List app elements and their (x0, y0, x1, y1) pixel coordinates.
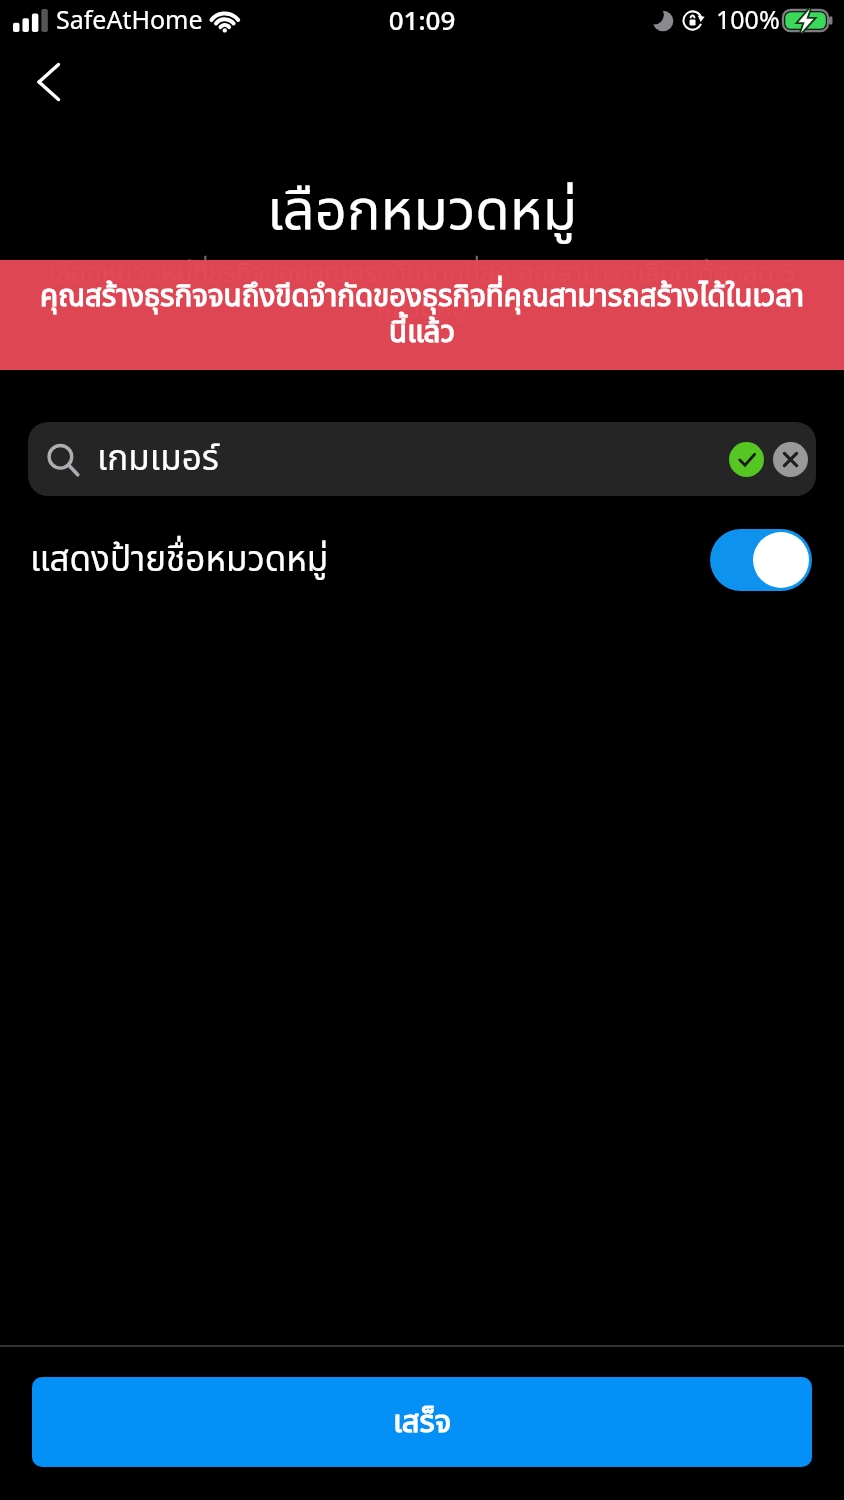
staticText: เสร็จ (393, 1399, 452, 1446)
staticText: เลือกหมวดหมู่ที่ธุรกิจของคุณตรงกับมากที่… (36, 254, 808, 329)
button[interactable]: แสดงป้ายชื่อหมวดหมู่ (30, 520, 812, 600)
staticText: เกมเมอร์ (97, 433, 219, 486)
button[interactable]: เสร็จ (32, 1377, 812, 1467)
button[interactable]: Back (16, 50, 82, 116)
staticText: คุณสร้างธุรกิจจนถึงขีดจำกัดของธุรกิจที่ค… (40, 275, 804, 356)
staticText: 100% (716, 2, 780, 36)
button[interactable]: Confirm (729, 442, 764, 477)
staticText: แสดงป้ายชื่อหมวดหมู่ (30, 534, 329, 587)
button[interactable]: เกมเมอร์ (28, 422, 816, 496)
staticText: 01:09 (0, 2, 844, 37)
staticText: SafeAtHome (56, 2, 203, 36)
staticText: เลือกหมวดหมู่ (0, 170, 844, 255)
button[interactable]: Clear (773, 442, 808, 477)
